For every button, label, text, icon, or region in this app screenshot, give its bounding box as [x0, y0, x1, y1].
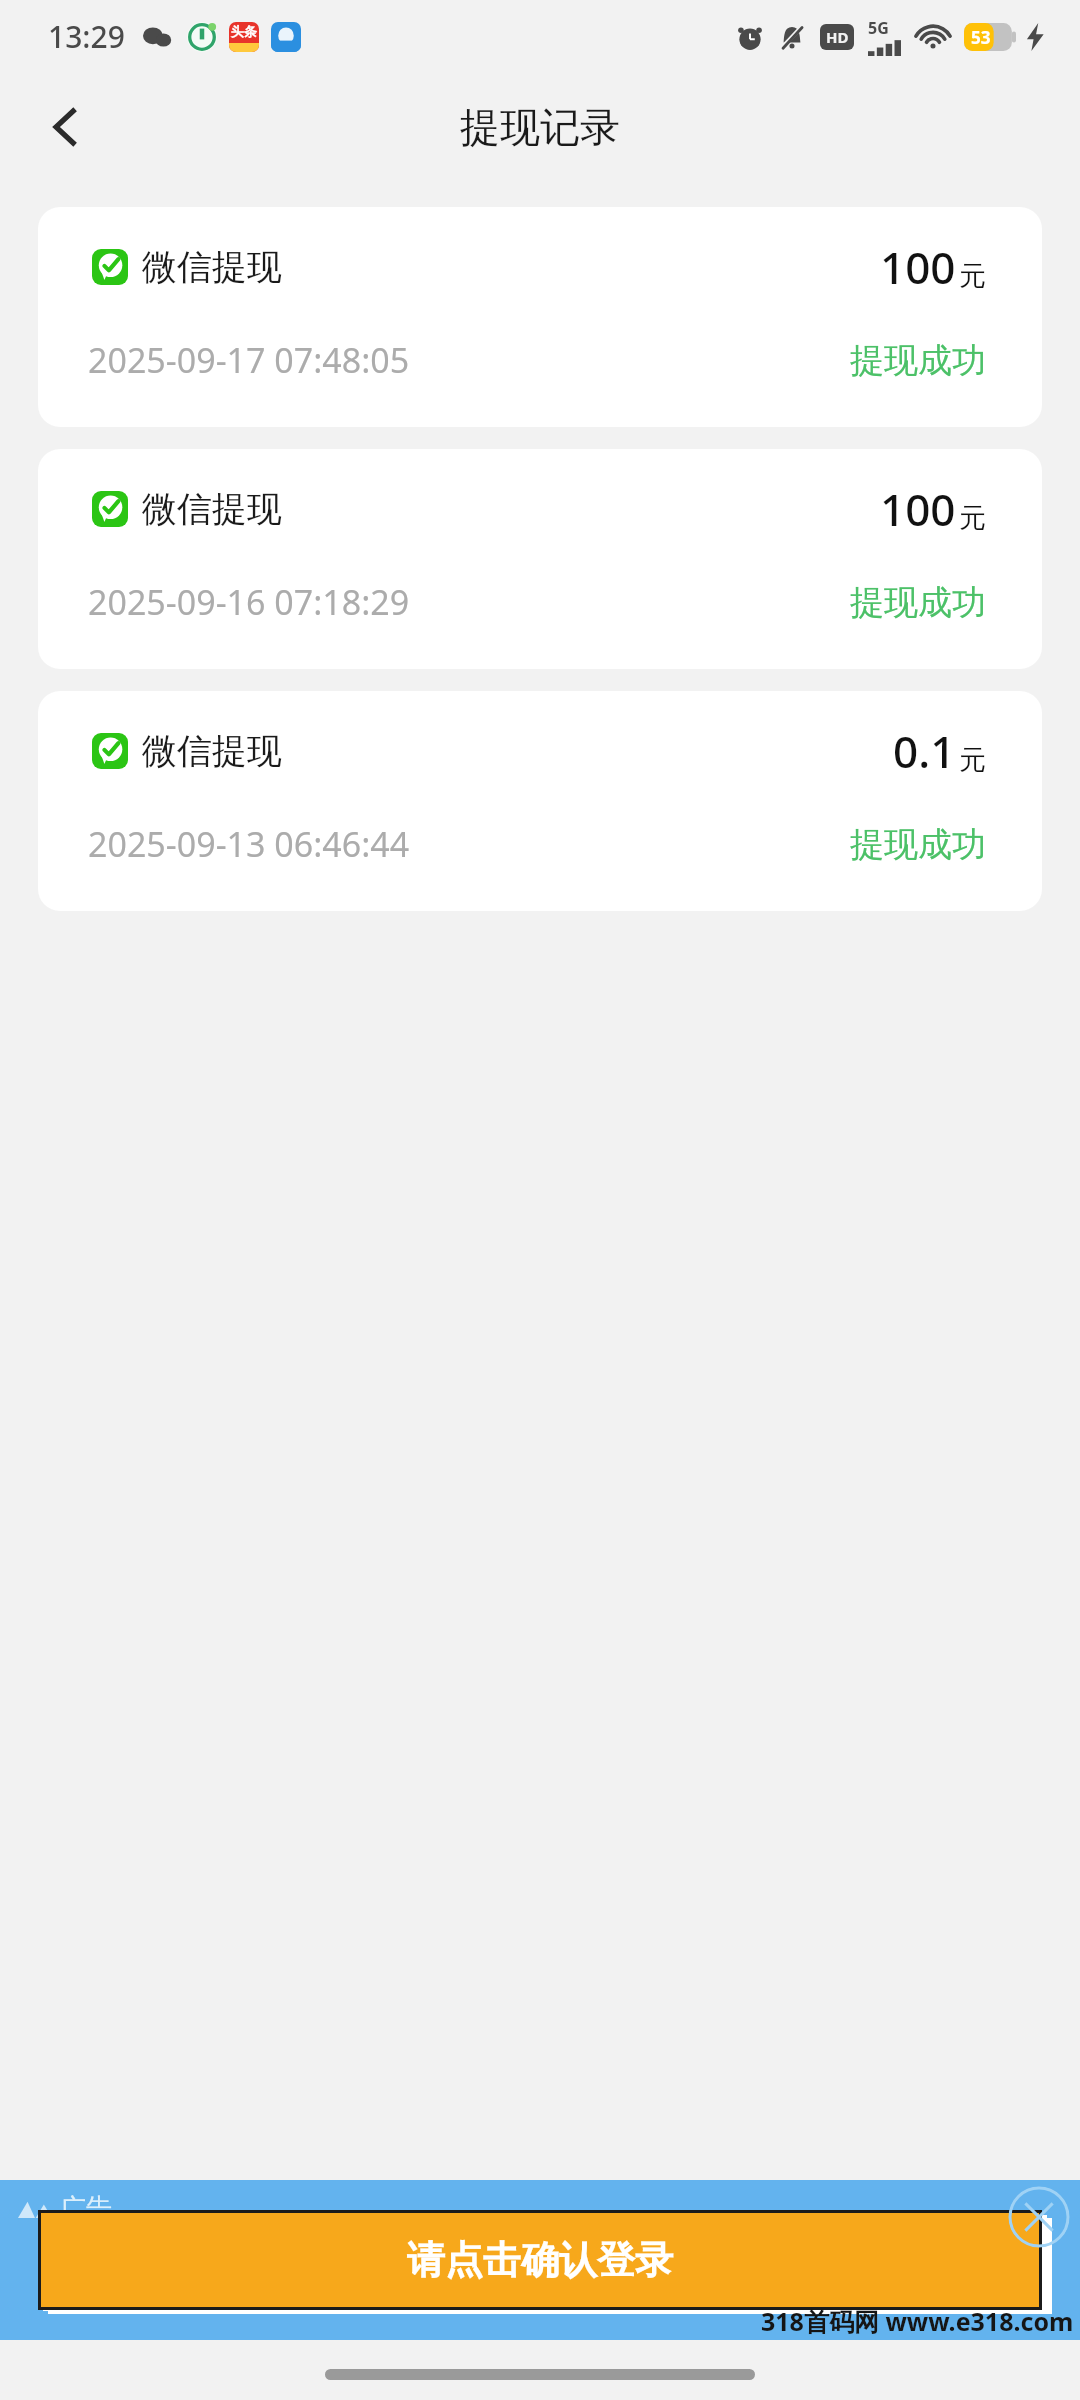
staticText: 提现成功 [850, 823, 986, 866]
staticText: 2025-09-17 07:48:05 [88, 337, 410, 383]
button[interactable]: Close ad [1008, 2186, 1070, 2248]
staticText: 元 [959, 501, 986, 535]
button[interactable]: 请点击确认登录 [41, 2213, 1039, 2307]
button[interactable]: 广告 [0, 2180, 1080, 2340]
staticText: HD [826, 27, 849, 47]
staticText: 53 [971, 26, 991, 49]
button[interactable]: 微信提现 [38, 691, 1042, 911]
staticText: 微信提现 [142, 729, 282, 773]
staticText: 微信提现 [142, 487, 282, 531]
staticText: 提现成功 [850, 339, 986, 382]
staticText: 元 [959, 743, 986, 777]
staticText: 100 [880, 237, 956, 297]
staticText: 0.1 [893, 721, 956, 781]
button[interactable]: 微信提现 [38, 207, 1042, 427]
staticText: 100 [880, 479, 956, 539]
staticText: 2025-09-13 06:46:44 [88, 821, 410, 867]
staticText: 13:29 [48, 16, 125, 57]
button[interactable]: 微信提现 [38, 449, 1042, 669]
staticText: 2025-09-16 07:18:29 [88, 579, 410, 625]
staticText: 元 [959, 259, 986, 293]
staticText: 广告 [60, 2192, 112, 2225]
staticText: 5G [868, 17, 889, 39]
staticText: 请点击确认登录 [407, 2236, 673, 2284]
staticText: 微信提现 [142, 245, 282, 289]
staticText: 318首码网 www.e318.com [761, 2304, 1074, 2338]
staticText: 提现记录 [460, 102, 620, 152]
button[interactable]: Back [24, 85, 108, 169]
staticText: 头条 [231, 23, 257, 39]
staticText: 提现成功 [850, 581, 986, 624]
